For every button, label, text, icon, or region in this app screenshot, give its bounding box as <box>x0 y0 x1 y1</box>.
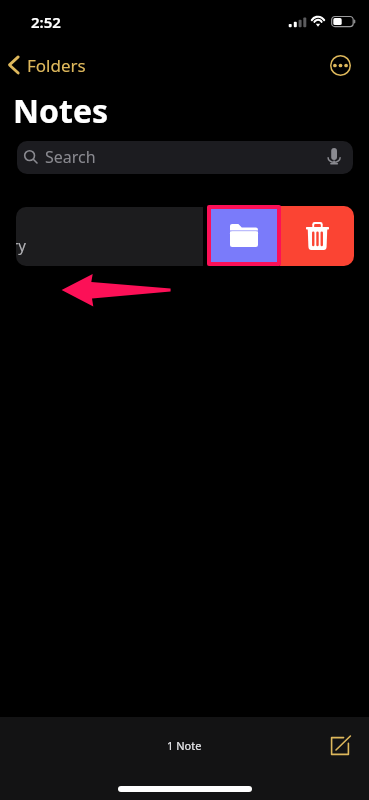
staticText: 1 Note <box>167 738 202 753</box>
staticText: ry <box>16 235 26 255</box>
button[interactable]: Search <box>17 141 353 174</box>
staticText: Folders <box>27 54 86 77</box>
staticText: 2:52 <box>31 12 61 32</box>
button[interactable]: Delete <box>280 206 354 266</box>
staticText: Notes <box>13 89 109 133</box>
button[interactable]: More options <box>330 55 351 76</box>
button[interactable]: New note <box>326 732 354 760</box>
button[interactable]: ry <box>16 207 203 266</box>
staticText: Search <box>45 146 96 168</box>
button[interactable]: Move to folder <box>207 205 281 266</box>
button[interactable]: Folders <box>4 52 90 80</box>
